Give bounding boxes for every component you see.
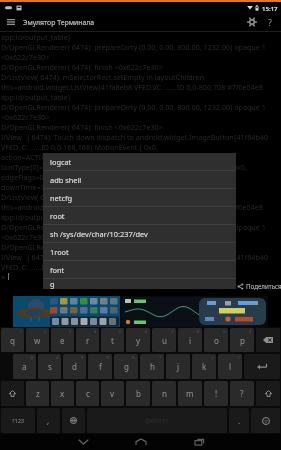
staticText: Эмулятор Терминала <box>23 18 95 27</box>
button[interactable]: u <box>152 328 176 352</box>
button[interactable]: o <box>204 328 228 352</box>
staticText: D/OpenGLRenderer( 6474): prepareDirty (0… <box>1 102 266 112</box>
button[interactable]: w <box>26 328 49 352</box>
button[interactable]: Home <box>112 434 170 450</box>
button[interactable]: Back <box>54 434 112 450</box>
button[interactable]: Shift <box>1 381 24 406</box>
button[interactable]: p <box>230 328 254 352</box>
button[interactable]: ! <box>204 381 228 406</box>
button[interactable]: q <box>1 328 24 352</box>
staticText: <0x622c7e30> <box>1 232 50 242</box>
staticText: j <box>177 361 180 372</box>
staticText: n <box>162 388 167 399</box>
staticText: r <box>86 335 90 346</box>
button[interactable]: Menu <box>0 13 22 31</box>
staticText: z <box>36 388 40 399</box>
staticText: b <box>136 388 141 399</box>
staticText: VFED..C. ......ID 0,0-168,168} MotionEve… <box>1 262 143 272</box>
button[interactable]: b <box>126 381 150 406</box>
staticText: D/OpenGLRenderer( 6474): finish <0x622c7… <box>1 62 163 72</box>
button[interactable]: netcfg <box>43 189 236 206</box>
button[interactable]: m <box>178 381 202 406</box>
staticText: 3 <box>69 329 72 335</box>
button[interactable]: y <box>126 328 150 352</box>
button[interactable]: s <box>38 354 61 379</box>
button[interactable]: c <box>76 381 99 406</box>
button[interactable]: f <box>88 354 112 379</box>
staticText: t <box>111 335 114 346</box>
staticText: v <box>110 388 115 399</box>
button[interactable]: ?123 <box>1 408 35 433</box>
button[interactable]: logcat <box>43 153 236 170</box>
staticText: 6 <box>145 329 148 335</box>
button[interactable]: z <box>26 381 49 406</box>
button[interactable]: i <box>178 328 202 352</box>
staticText: l <box>229 361 232 372</box>
staticText: 1 <box>19 329 22 335</box>
staticText: , <box>47 415 50 426</box>
staticText: 15:17 <box>262 4 278 12</box>
button[interactable]: , <box>37 408 60 433</box>
button[interactable]: ? <box>230 381 254 406</box>
staticText: u <box>162 335 167 346</box>
staticText: D/ListView( 6474): mSelectorRect.setEmpt… <box>1 72 205 82</box>
staticText: w <box>34 335 41 346</box>
button[interactable]: 1root <box>43 243 236 260</box>
button[interactable]: j <box>166 354 190 379</box>
staticText: adb shell <box>50 175 82 185</box>
staticText: 7 <box>171 329 174 335</box>
button[interactable]: l <box>218 354 242 379</box>
button[interactable]: n <box>152 381 176 406</box>
staticText: D/ListView( 6474): mSelectorRect.setEmpt… <box>1 192 205 202</box>
staticText: q <box>10 335 15 346</box>
button[interactable]: Settings <box>243 13 261 31</box>
button[interactable]: Emoji <box>251 408 280 433</box>
staticText: D/OpenGLRenderer( 6474): prepareDirty (0… <box>1 222 266 232</box>
staticText: y <box>136 335 141 346</box>
button[interactable]: Enter <box>244 354 280 379</box>
button[interactable]: Shift <box>256 381 280 406</box>
staticText: ( <box>238 355 240 361</box>
staticText: m <box>186 388 194 399</box>
button[interactable]: adb shell <box>43 171 236 188</box>
staticText: k <box>202 361 207 372</box>
button[interactable]: Backspace <box>256 328 280 352</box>
button[interactable]: r <box>76 328 99 352</box>
button[interactable]: g <box>114 354 138 379</box>
button[interactable]: Recents <box>170 434 228 450</box>
staticText: I/View ( 6474): Touch down dispatch to a… <box>1 252 269 262</box>
button[interactable]: Help <box>261 13 279 31</box>
button[interactable]: t <box>101 328 124 352</box>
staticText: I/View ( 6474): Touch down dispatch to a… <box>1 132 269 142</box>
staticText: # <box>56 355 59 361</box>
button[interactable]: font <box>43 261 236 278</box>
button[interactable]: root <box>43 207 236 224</box>
button[interactable]: sh /sys/dev/char/10:237/dev <box>43 225 236 242</box>
button[interactable]: Поделиться <box>237 281 281 291</box>
staticText: x <box>60 388 65 399</box>
button[interactable]: v <box>101 381 124 406</box>
staticText: downTime=93244, deviceId=4, source=0x100… <box>1 182 161 192</box>
staticText: 1root <box>50 247 69 257</box>
staticText: root <box>50 211 65 221</box>
button[interactable]: a <box>13 354 36 379</box>
button[interactable]: x <box>51 381 74 406</box>
staticText: toolType[0]=TOOL_TYPE_FINGER, buttonStat… <box>1 162 247 172</box>
button[interactable]: h <box>140 354 164 379</box>
button[interactable]: d <box>63 354 86 379</box>
button[interactable]: . <box>229 408 249 433</box>
button[interactable]: g <box>43 279 236 289</box>
staticText: sh /sys/dev/char/10:237/dev <box>50 229 148 239</box>
staticText: * <box>159 355 162 361</box>
button[interactable]: k <box>192 354 216 379</box>
staticText: & <box>132 355 136 361</box>
button[interactable]: e <box>51 328 74 352</box>
button[interactable]: Language <box>62 408 85 433</box>
staticText: QWERTY <box>145 417 169 425</box>
staticText: 9 <box>223 329 226 335</box>
staticText: app:id/output_table} <box>1 92 71 102</box>
staticText: f <box>99 361 102 372</box>
staticText: + <box>211 355 214 361</box>
